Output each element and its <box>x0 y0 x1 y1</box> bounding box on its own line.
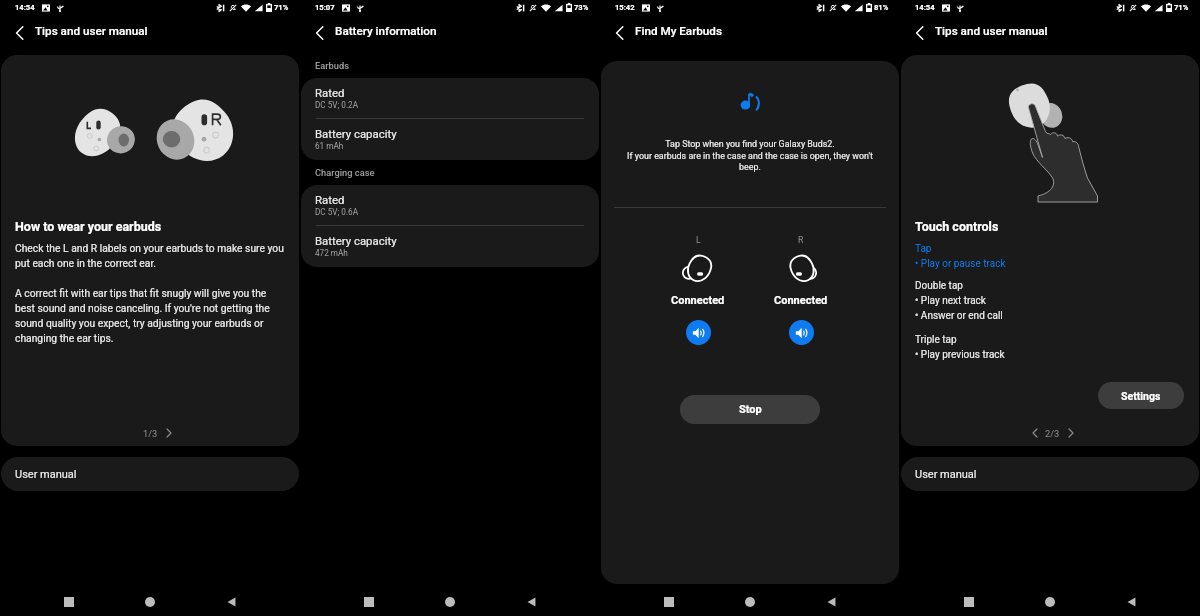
button[interactable]: Recents <box>44 586 94 616</box>
staticText: Battery capacity <box>315 234 397 247</box>
button[interactable]: User manual <box>901 457 1199 491</box>
staticText: Charging case <box>315 167 375 178</box>
button[interactable]: Recents <box>344 586 394 616</box>
staticText: 2/3 <box>1045 428 1060 439</box>
staticText: Tips and user manual <box>935 24 1048 38</box>
staticText: Rated <box>315 193 345 206</box>
staticText: Touch controls <box>915 219 999 234</box>
staticText: Connected <box>671 294 725 307</box>
button[interactable]: Back <box>904 17 935 48</box>
staticText: Earbuds <box>315 60 349 71</box>
staticText: Tap • Play or pause track <box>915 243 1006 269</box>
button[interactable]: Home <box>125 586 175 616</box>
staticText: DC 5V; 0.6A <box>315 207 359 217</box>
staticText: R <box>798 235 804 245</box>
staticText: 472 mAh <box>315 248 348 258</box>
button[interactable]: Next page <box>1064 424 1078 441</box>
button[interactable]: User manual <box>1 457 299 491</box>
button[interactable]: Settings <box>1098 382 1184 409</box>
button[interactable]: Back <box>206 586 256 616</box>
staticText: Connected <box>774 294 828 307</box>
staticText: DC 5V; 0.2A <box>315 100 359 110</box>
button[interactable]: Back <box>4 17 35 48</box>
staticText: 15:07 <box>315 3 335 12</box>
button[interactable]: Battery capacity <box>301 119 599 160</box>
staticText: 71% <box>1174 3 1189 12</box>
staticText: 73% <box>574 3 589 12</box>
staticText: Rated <box>315 86 345 99</box>
staticText: User manual <box>15 468 77 481</box>
button[interactable]: Rated <box>301 185 599 226</box>
button[interactable]: Back <box>604 17 635 48</box>
button[interactable]: Back <box>304 17 335 48</box>
staticText: Tap Stop when you find your Galaxy Buds2… <box>618 139 882 172</box>
staticText: 15:42 <box>615 3 635 12</box>
staticText: L <box>696 235 701 245</box>
button[interactable]: Stop <box>680 395 820 424</box>
button[interactable]: Rated <box>301 78 599 119</box>
staticText: Battery information <box>335 24 437 38</box>
staticText: A correct fit with ear tips that fit snu… <box>15 287 287 345</box>
button[interactable]: Home <box>1025 586 1075 616</box>
button[interactable]: Play sound <box>686 320 711 345</box>
button[interactable]: Back <box>806 586 856 616</box>
staticText: Find My Earbuds <box>635 24 722 38</box>
staticText: Stop <box>739 403 762 416</box>
button[interactable]: Back <box>1106 586 1156 616</box>
staticText: Settings <box>1121 390 1161 402</box>
button[interactable]: Recents <box>644 586 694 616</box>
button[interactable]: Battery capacity <box>301 226 599 267</box>
staticText: Tips and user manual <box>35 24 148 38</box>
button[interactable]: Previous page <box>1028 424 1042 441</box>
button[interactable]: Play sound <box>789 320 814 345</box>
staticText: 14:54 <box>15 3 35 12</box>
staticText: Check the L and R labels on your earbuds… <box>15 242 287 270</box>
staticText: 71% <box>274 3 289 12</box>
button[interactable]: Next page <box>162 424 176 441</box>
staticText: 14:54 <box>915 3 935 12</box>
staticText: User manual <box>915 468 977 481</box>
staticText: How to wear your earbuds <box>15 219 162 234</box>
staticText: 81% <box>874 3 889 12</box>
button[interactable]: Back <box>506 586 556 616</box>
staticText: Battery capacity <box>315 127 397 140</box>
staticText: 1/3 <box>143 428 158 439</box>
staticText: Double tap • Play next track • Answer or… <box>915 280 1003 321</box>
button[interactable]: Recents <box>944 586 994 616</box>
button[interactable]: Home <box>725 586 775 616</box>
staticText: 61 mAh <box>315 141 344 151</box>
staticText: Triple tap • Play previous track <box>915 334 1005 360</box>
button[interactable]: Home <box>425 586 475 616</box>
